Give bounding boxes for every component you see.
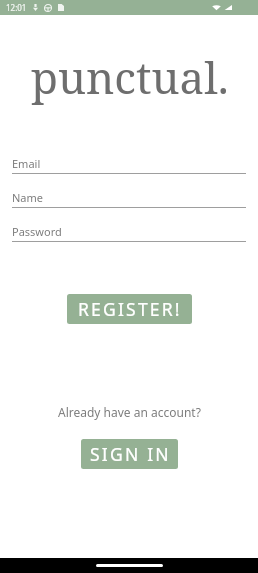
button[interactable]: SIGN IN	[81, 439, 178, 469]
staticText: Name	[12, 190, 44, 205]
other: Notification	[58, 4, 64, 11]
staticText: 12:01	[6, 2, 27, 13]
staticText: Email	[12, 156, 41, 171]
button[interactable]: REGISTER!	[67, 294, 192, 324]
staticText: punctual.	[31, 47, 229, 107]
other: Do not disturb	[44, 4, 52, 12]
other: Data saver	[33, 4, 38, 11]
staticText: SIGN IN	[90, 442, 171, 466]
staticText: REGISTER!	[78, 297, 182, 321]
staticText: Already have an account?	[58, 404, 201, 420]
other: Mobile signal	[224, 3, 232, 12]
staticText: Password	[12, 224, 62, 239]
other: Wi-Fi	[212, 3, 221, 12]
button[interactable]: Password	[12, 224, 246, 242]
button[interactable]: Email	[12, 156, 246, 174]
button[interactable]: Name	[12, 190, 246, 208]
other: Home	[96, 564, 163, 567]
